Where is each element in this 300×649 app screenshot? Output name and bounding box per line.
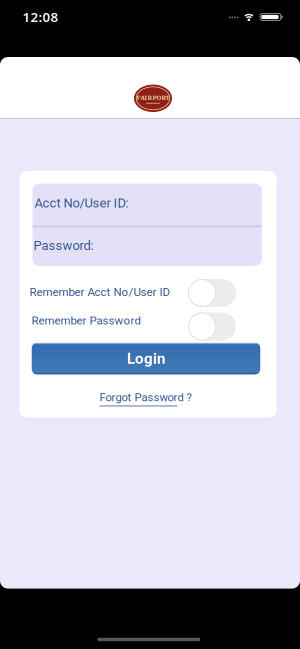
staticText: Login [127, 350, 165, 367]
button[interactable]: Acct No/User ID: [32, 183, 262, 226]
staticText: Acct No/User ID: [34, 196, 128, 211]
staticText: 12:08 [22, 8, 58, 26]
button[interactable]: Remember Acct No/User ID [188, 279, 236, 307]
button[interactable]: Password: [32, 226, 262, 266]
staticText: ? [187, 391, 192, 404]
staticText: Remember Acct No/User ID [30, 285, 171, 299]
staticText: FAIRPORT [136, 94, 169, 101]
staticText: Password: [33, 238, 93, 253]
staticText: Forgot Password [100, 391, 184, 404]
staticText: Remember Password [31, 314, 140, 327]
button[interactable]: Forgot Password [100, 391, 192, 406]
button[interactable]: Remember Password [188, 312, 236, 340]
button[interactable]: Login [32, 343, 260, 374]
